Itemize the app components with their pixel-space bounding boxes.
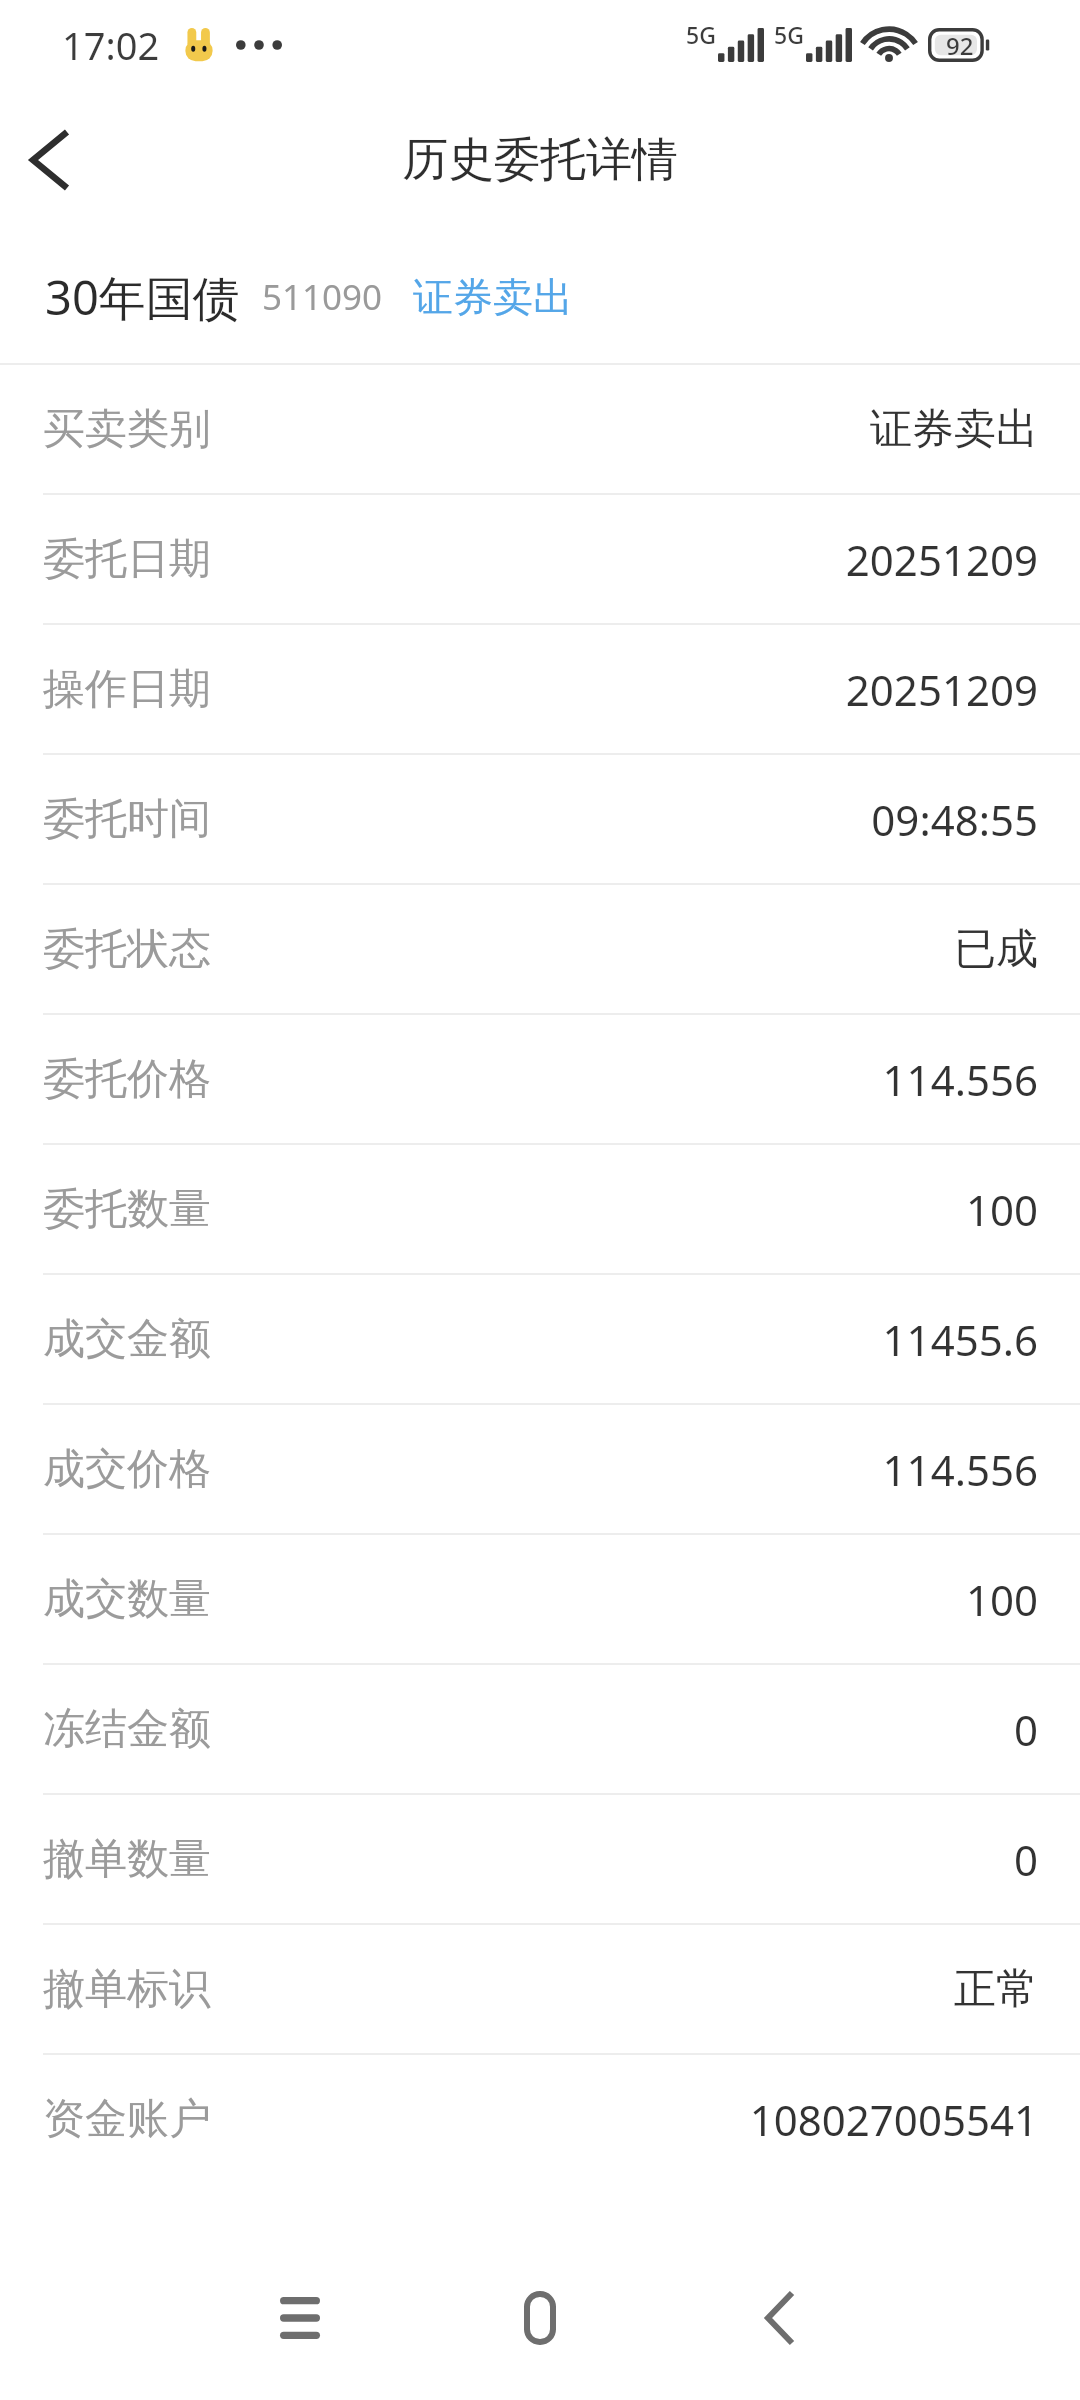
staticText: 资金账户 [43, 2093, 211, 2146]
staticText: 17:02 [62, 19, 160, 71]
staticText: 证券卖出 [413, 272, 573, 322]
button[interactable]: Back [0, 110, 100, 210]
staticText: 历史委托详情 [402, 131, 678, 189]
button[interactable]: 撤单数量 [0, 1795, 1080, 1923]
button[interactable]: Recents [238, 2256, 362, 2380]
button[interactable]: 成交金额 [0, 1275, 1080, 1403]
staticText: 委托数量 [43, 1183, 211, 1236]
button[interactable]: 30年国债 [0, 230, 1080, 363]
button[interactable]: 买卖类别 [0, 365, 1080, 493]
staticText: 20251209 [845, 531, 1038, 588]
staticText: 20251209 [845, 661, 1038, 718]
staticText: 5G [774, 19, 804, 50]
staticText: 委托时间 [43, 793, 211, 846]
button[interactable]: 委托价格 [0, 1015, 1080, 1143]
staticText: 92 [946, 29, 974, 62]
staticText: 114.556 [882, 1051, 1038, 1108]
staticText: 冻结金额 [43, 1703, 211, 1756]
button[interactable]: 委托状态 [0, 885, 1080, 1013]
staticText: 100 [965, 1181, 1038, 1238]
button[interactable]: 委托数量 [0, 1145, 1080, 1273]
staticText: 30年国债 [45, 265, 240, 329]
staticText: 已成 [954, 923, 1038, 976]
staticText: 正常 [954, 1963, 1038, 2016]
staticText: 成交金额 [43, 1313, 211, 1366]
button[interactable]: Home [478, 2256, 602, 2380]
button[interactable]: 冻结金额 [0, 1665, 1080, 1793]
staticText: 买卖类别 [43, 403, 211, 456]
button[interactable]: 成交价格 [0, 1405, 1080, 1533]
staticText: 511090 [262, 273, 383, 321]
button[interactable]: Back [718, 2256, 842, 2380]
staticText: 108027005541 [749, 2091, 1038, 2148]
staticText: 100 [965, 1571, 1038, 1628]
button[interactable]: 委托日期 [0, 495, 1080, 623]
staticText: 委托日期 [43, 533, 211, 586]
staticText: 撤单数量 [43, 1833, 211, 1886]
button[interactable]: 资金账户 [0, 2055, 1080, 2183]
staticText: 0 [1013, 1831, 1038, 1888]
staticText: 09:48:55 [871, 791, 1038, 848]
staticText: 114.556 [882, 1441, 1038, 1498]
staticText: 撤单标识 [43, 1963, 211, 2016]
staticText: 操作日期 [43, 663, 211, 716]
staticText: 委托状态 [43, 923, 211, 976]
staticText: 成交价格 [43, 1443, 211, 1496]
staticText: 成交数量 [43, 1573, 211, 1626]
staticText: 5G [686, 19, 716, 50]
button[interactable]: 撤单标识 [0, 1925, 1080, 2053]
staticText: 0 [1013, 1701, 1038, 1758]
button[interactable]: 操作日期 [0, 625, 1080, 753]
button[interactable]: 委托时间 [0, 755, 1080, 883]
button[interactable]: 成交数量 [0, 1535, 1080, 1663]
staticText: 11455.6 [882, 1311, 1038, 1368]
staticText: 委托价格 [43, 1053, 211, 1106]
staticText: 证券卖出 [870, 403, 1038, 456]
